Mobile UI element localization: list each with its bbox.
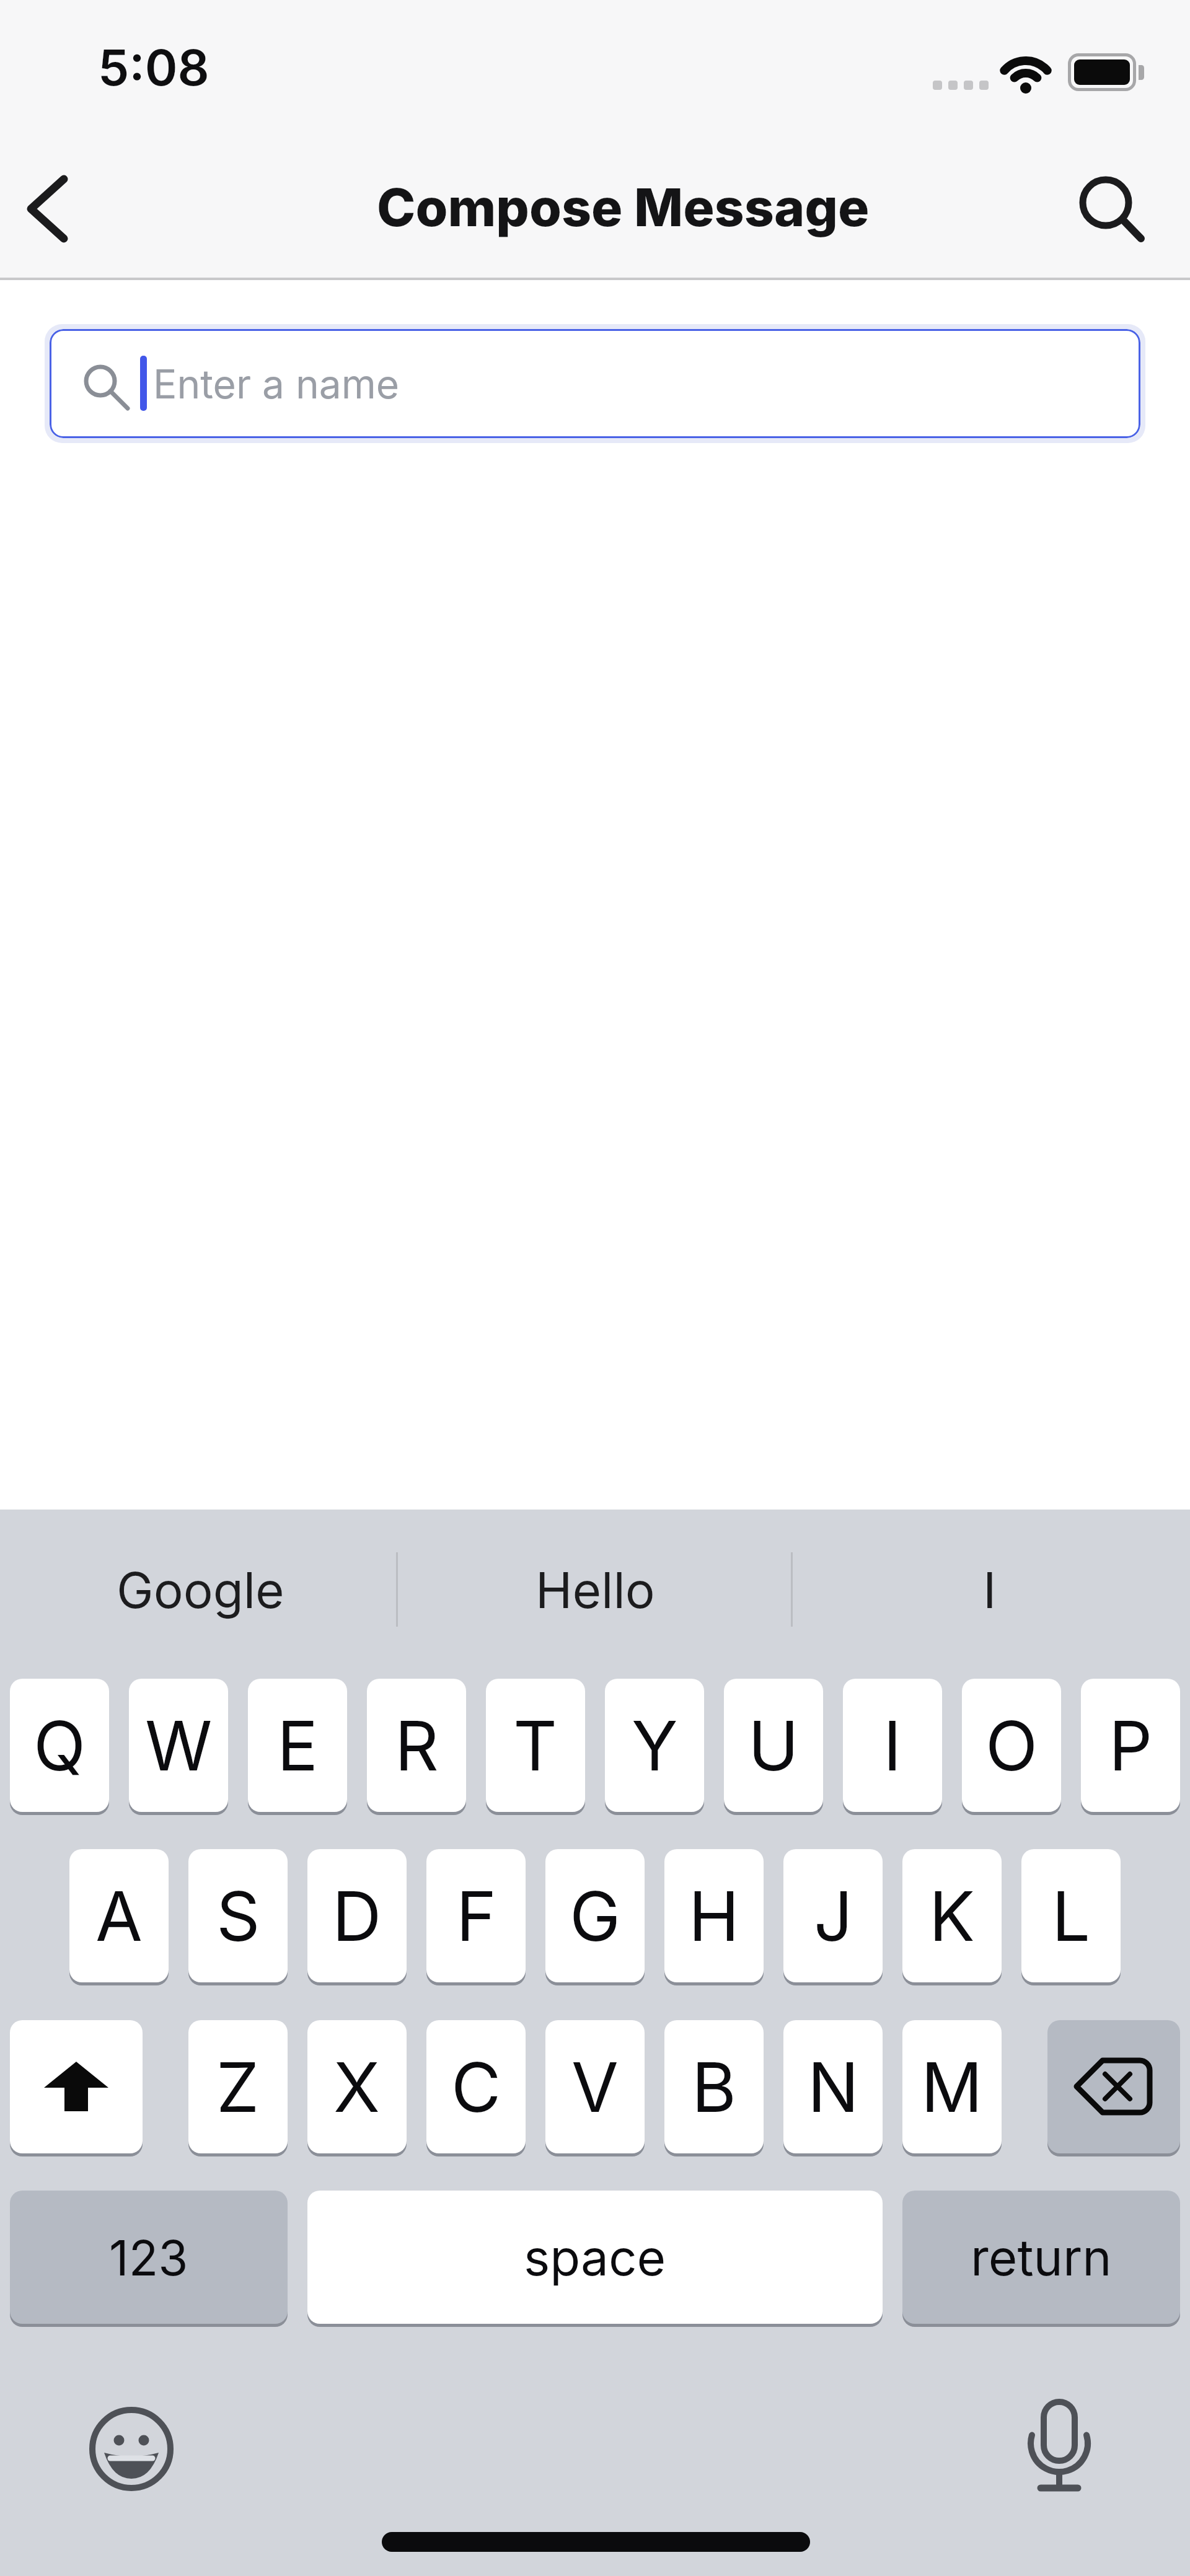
button[interactable]: N [783, 2020, 883, 2153]
staticText: return [971, 2227, 1112, 2287]
staticText: I [883, 1704, 902, 1787]
button[interactable]: A [69, 1849, 169, 1982]
button[interactable]: B [664, 2020, 764, 2153]
staticText: space [524, 2227, 666, 2287]
button[interactable]: Google [2, 1549, 399, 1630]
button[interactable]: return [902, 2191, 1180, 2324]
staticText: N [808, 2046, 859, 2128]
staticText: A [95, 1875, 143, 1957]
button[interactable]: E [248, 1679, 347, 1812]
button[interactable]: U [724, 1679, 823, 1812]
button[interactable]: K [902, 1849, 1002, 1982]
button[interactable]: J [783, 1849, 883, 1982]
button[interactable]: P [1081, 1679, 1180, 1812]
button[interactable]: D [307, 1849, 407, 1982]
staticText: Z [216, 2046, 260, 2128]
button[interactable]: G [545, 1849, 645, 1982]
staticText: Enter a name [153, 360, 400, 408]
button[interactable]: T [486, 1679, 585, 1812]
staticText: 5:08 [98, 37, 209, 97]
button[interactable]: R [367, 1679, 466, 1812]
staticText: J [814, 1875, 853, 1957]
button[interactable] [10, 2020, 143, 2153]
staticText: H [689, 1875, 739, 1957]
staticText: R [395, 1704, 439, 1787]
button[interactable]: L [1021, 1849, 1121, 1982]
button[interactable] [1016, 2389, 1103, 2500]
button[interactable]: S [188, 1849, 288, 1982]
button[interactable]: Z [188, 2020, 288, 2153]
staticText: P [1109, 1704, 1153, 1787]
button[interactable]: H [664, 1849, 764, 1982]
button[interactable]: W [129, 1679, 228, 1812]
button[interactable]: Hello [397, 1549, 793, 1630]
staticText: T [513, 1704, 558, 1787]
staticText: K [929, 1875, 975, 1957]
button[interactable]: 123 [10, 2191, 288, 2324]
button[interactable]: V [545, 2020, 645, 2153]
staticText: Q [33, 1704, 86, 1787]
staticText: M [921, 2046, 983, 2128]
button[interactable]: X [307, 2020, 407, 2153]
button[interactable]: I [791, 1549, 1188, 1630]
staticText: L [1052, 1875, 1091, 1957]
staticText: Hello [535, 1560, 655, 1620]
staticText: Google [117, 1560, 284, 1620]
button[interactable] [50, 329, 1140, 438]
staticText: I [983, 1560, 997, 1620]
button[interactable]: space [307, 2191, 883, 2324]
button[interactable] [1047, 2020, 1180, 2153]
staticText: D [332, 1875, 382, 1957]
button[interactable]: O [962, 1679, 1061, 1812]
staticText: O [985, 1704, 1038, 1787]
staticText: B [692, 2046, 736, 2128]
button[interactable]: M [902, 2020, 1002, 2153]
button[interactable]: I [843, 1679, 942, 1812]
staticText: C [451, 2046, 501, 2128]
staticText: S [216, 1875, 260, 1957]
button[interactable] [12, 161, 87, 254]
staticText: E [277, 1704, 319, 1787]
staticText: U [748, 1704, 799, 1787]
staticText: 123 [109, 2228, 188, 2287]
button[interactable] [81, 2398, 183, 2500]
button[interactable]: Y [605, 1679, 704, 1812]
staticText: V [571, 2046, 619, 2128]
staticText: Y [632, 1704, 678, 1787]
staticText: W [145, 1704, 213, 1787]
button[interactable]: Q [10, 1679, 109, 1812]
staticText: F [456, 1875, 496, 1957]
staticText: Compose Message [377, 176, 870, 239]
button[interactable]: C [426, 2020, 526, 2153]
staticText: G [570, 1875, 621, 1957]
button[interactable]: F [426, 1849, 526, 1982]
button[interactable] [1060, 158, 1153, 251]
staticText: X [333, 2046, 381, 2128]
